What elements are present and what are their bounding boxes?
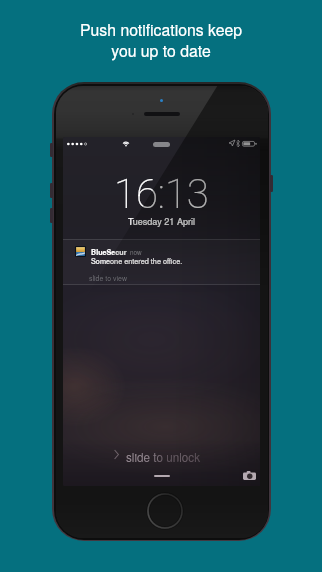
staticText: Push notifications keep you up to date (80, 18, 242, 61)
staticText: slide to unlock (126, 449, 200, 466)
button[interactable]: BlueSecur (63, 239, 260, 285)
staticText: now (130, 248, 142, 257)
staticText: 16:13 (114, 171, 209, 218)
staticText: Tuesday 21 April (63, 215, 260, 228)
button[interactable]: Camera (243, 471, 256, 480)
staticText: Someone entered the office. (91, 256, 183, 266)
staticText: BlueSecur (91, 247, 127, 257)
staticText: slide to view (89, 273, 127, 283)
